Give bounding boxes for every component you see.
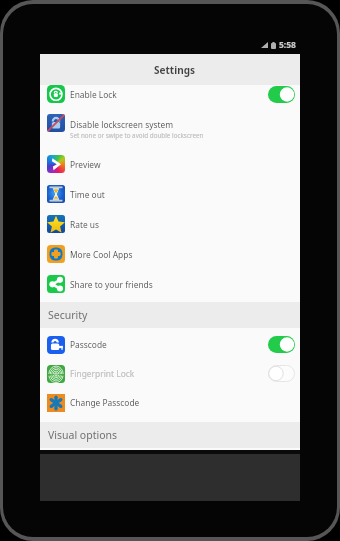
button[interactable]: Share to your friends <box>40 269 300 299</box>
staticText: More Cool Apps <box>70 249 133 260</box>
button[interactable]: Switch off <box>268 365 295 382</box>
staticText: Security <box>48 308 88 322</box>
button[interactable]: Fingerprint Lock <box>40 359 300 388</box>
button[interactable]: Enable Lock <box>40 79 300 109</box>
staticText: Passcode <box>70 339 107 350</box>
staticText: Set none or swipe to avoid double locksc… <box>70 131 204 140</box>
button[interactable]: Switch on <box>268 86 295 103</box>
button[interactable]: Switch on <box>268 336 295 353</box>
button[interactable]: Preview <box>40 149 300 179</box>
button[interactable]: Disable lockscreen system <box>40 109 300 149</box>
staticText: Visual options <box>48 428 118 442</box>
staticText: Rate us <box>70 219 100 230</box>
button[interactable]: Change Passcode <box>40 388 300 417</box>
staticText: Time out <box>70 189 105 200</box>
staticText: Preview <box>70 159 101 170</box>
staticText: Enable Lock <box>70 89 117 100</box>
staticText: Share to your friends <box>70 279 153 290</box>
button[interactable]: More Cool Apps <box>40 239 300 269</box>
button[interactable]: Time out <box>40 179 300 209</box>
staticText: 5:58 <box>279 39 296 51</box>
staticText: Settings <box>154 63 195 77</box>
staticText: Disable lockscreen system <box>70 119 174 130</box>
staticText: Change Passcode <box>70 397 140 408</box>
staticText: Fingerprint Lock <box>70 368 135 379</box>
button[interactable]: Rate us <box>40 209 300 239</box>
button[interactable]: Passcode <box>40 330 300 359</box>
